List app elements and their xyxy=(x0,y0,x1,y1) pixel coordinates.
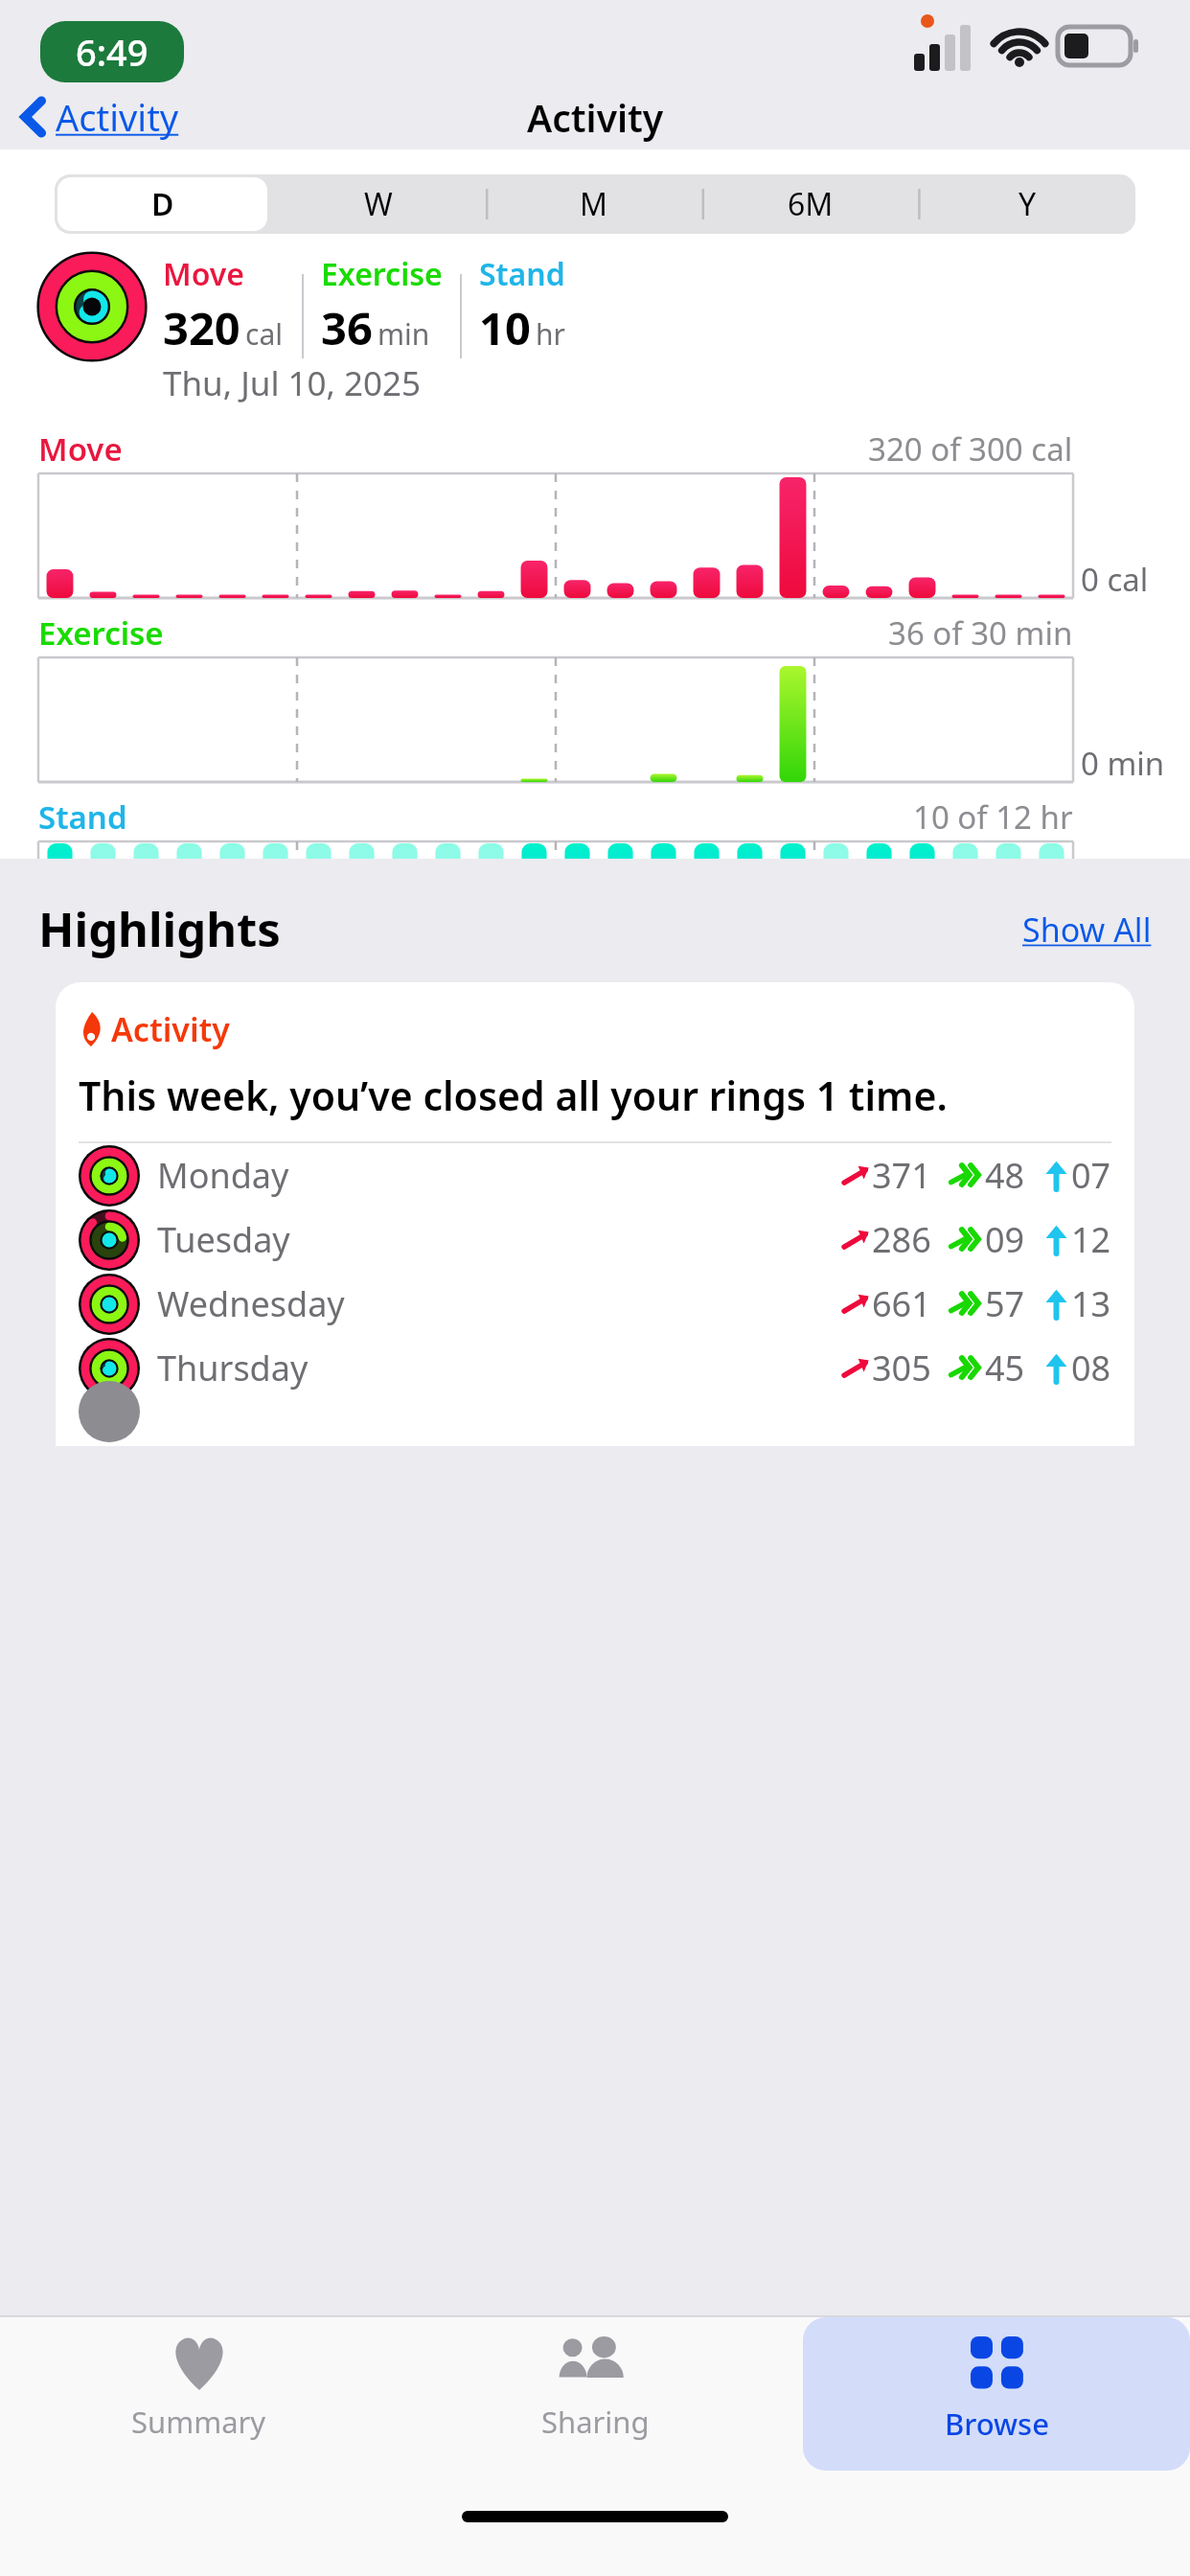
staticText: D xyxy=(151,183,174,225)
button[interactable]: Thursday xyxy=(56,1336,1134,1400)
staticText: 07 xyxy=(1071,1152,1111,1199)
staticText: 0 hrs xyxy=(1081,926,1156,943)
staticText: Thursday xyxy=(157,1345,309,1391)
staticText: Move xyxy=(163,253,245,295)
button[interactable]: Show All xyxy=(1017,902,1157,957)
button[interactable]: Sharing xyxy=(397,2317,793,2471)
staticText: Highlights xyxy=(38,897,281,961)
staticText: 0 min xyxy=(1081,742,1165,785)
staticText: 12 PM xyxy=(563,974,656,991)
other: Back xyxy=(21,97,46,137)
staticText: hr xyxy=(536,314,565,354)
staticText: Exercise xyxy=(321,253,443,295)
staticText: 36 of 30 min xyxy=(888,611,1073,655)
staticText: Y xyxy=(1018,183,1037,225)
button[interactable]: Y xyxy=(922,177,1133,231)
staticText: 12 xyxy=(1071,1216,1111,1263)
staticText: Stand xyxy=(479,253,565,295)
button[interactable]: W xyxy=(273,177,483,231)
staticText: 36 xyxy=(321,297,373,358)
staticText: 6 xyxy=(305,974,323,991)
staticText: 286 xyxy=(872,1216,931,1263)
button[interactable]: Summary xyxy=(0,2317,397,2471)
staticText: Summary xyxy=(131,2402,266,2442)
staticText: 371 xyxy=(872,1152,931,1199)
staticText: Tuesday xyxy=(157,1216,290,1263)
staticText: 10 of 12 hr xyxy=(913,795,1073,839)
staticText: W xyxy=(364,183,393,225)
staticText: 08 xyxy=(1071,1345,1111,1391)
button[interactable]: Tuesday xyxy=(56,1207,1134,1272)
staticText: Activity xyxy=(56,92,179,142)
staticText: Thu, Jul 10, 2025 xyxy=(163,360,422,406)
button[interactable]: Back xyxy=(0,84,193,149)
staticText: min xyxy=(378,314,430,354)
button[interactable]: Monday xyxy=(56,1143,1134,1207)
staticText: M xyxy=(580,183,608,225)
staticText: Stand xyxy=(38,795,127,839)
staticText: Show All xyxy=(1022,908,1152,952)
staticText: Sharing xyxy=(541,2402,650,2442)
staticText: Activity xyxy=(111,1007,230,1051)
staticText: 48 xyxy=(985,1152,1025,1199)
staticText: 13 xyxy=(1071,1280,1111,1327)
staticText: 0 cal xyxy=(1081,558,1149,601)
button[interactable]: M xyxy=(489,177,699,231)
staticText: 12 AM xyxy=(44,974,138,991)
staticText: This week, you’ve closed all your rings … xyxy=(79,1069,948,1122)
staticText: Activity xyxy=(527,92,664,143)
staticText: 320 of 300 cal xyxy=(868,427,1073,471)
staticText: Monday xyxy=(157,1152,289,1199)
staticText: 6:49 xyxy=(76,27,149,77)
staticText: Exercise xyxy=(38,611,164,655)
staticText: 09 xyxy=(985,1216,1025,1263)
staticText: Move xyxy=(38,427,123,471)
staticText: 661 xyxy=(872,1280,931,1327)
staticText: Browse xyxy=(945,2403,1049,2444)
staticText: 6M xyxy=(788,183,834,225)
staticText: 57 xyxy=(985,1280,1025,1327)
button[interactable]: Activity xyxy=(56,982,1134,1446)
button[interactable]: D xyxy=(57,177,267,231)
staticText: Wednesday xyxy=(157,1280,345,1327)
staticText: 305 xyxy=(872,1345,931,1391)
staticText: cal xyxy=(245,314,283,354)
staticText: 6 xyxy=(822,974,840,991)
button[interactable]: Wednesday xyxy=(56,1272,1134,1336)
staticText: 320 xyxy=(163,297,240,358)
staticText: 45 xyxy=(985,1345,1025,1391)
button[interactable]: Browse xyxy=(803,2317,1190,2471)
staticText: 10 xyxy=(479,297,531,358)
button[interactable]: 6M xyxy=(705,177,916,231)
